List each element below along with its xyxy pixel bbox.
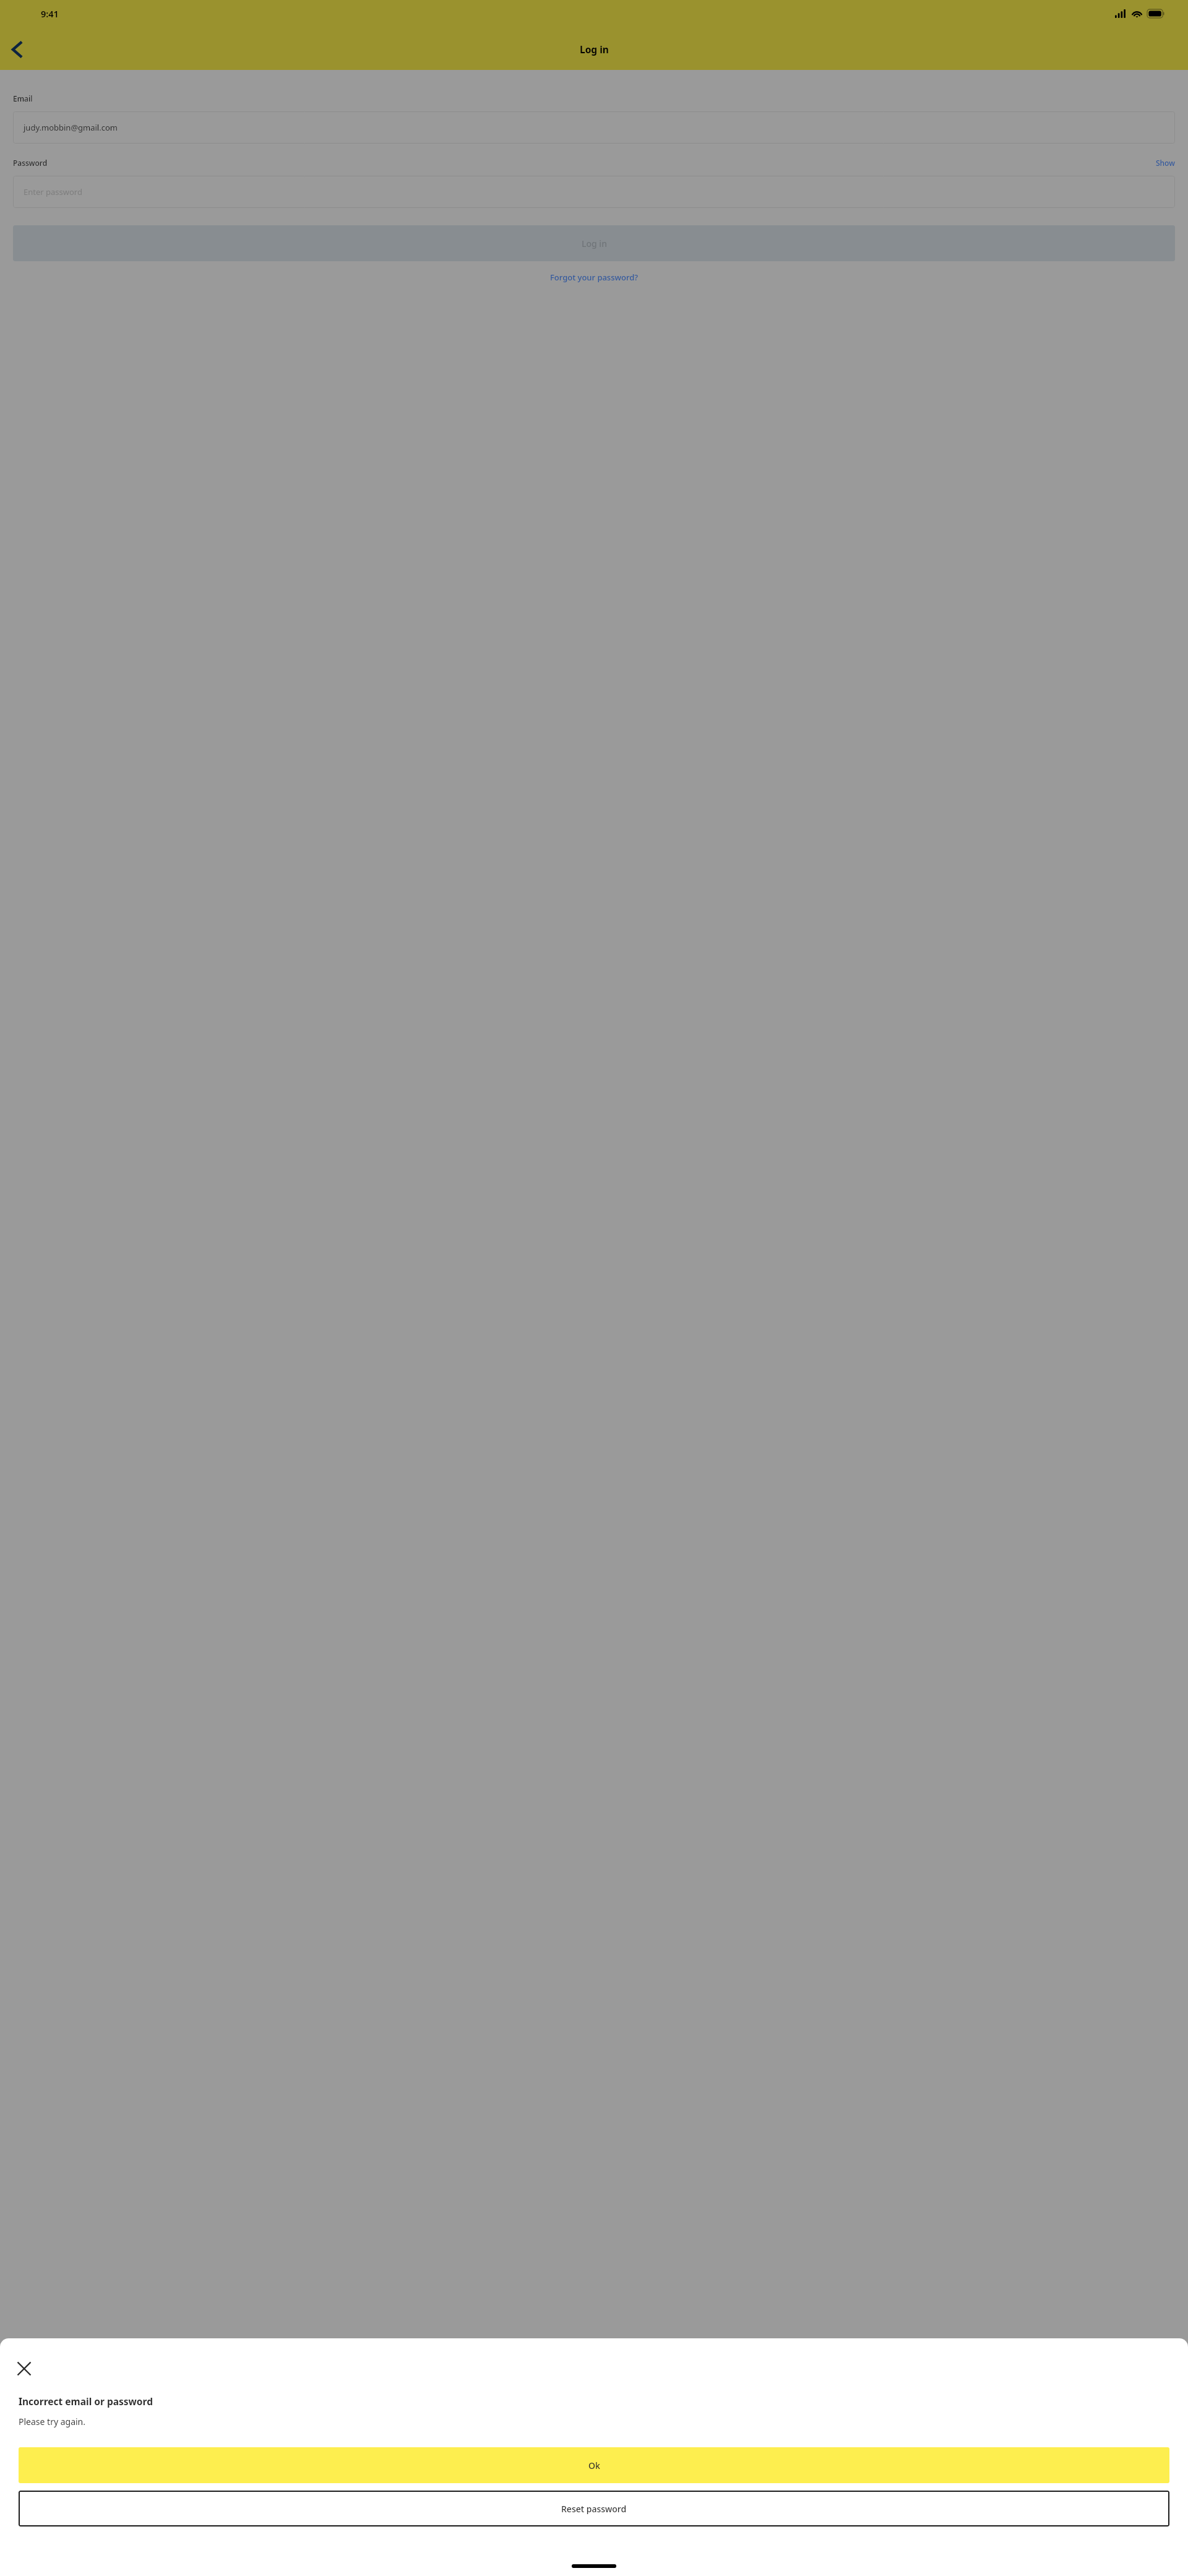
staticText: Log in xyxy=(582,238,607,249)
staticText: judy.mobbin@gmail.com xyxy=(24,122,118,133)
staticText: Enter password xyxy=(24,186,82,197)
staticText: Email xyxy=(13,93,33,103)
button[interactable]: Reset password xyxy=(19,2491,1169,2526)
staticText: Password xyxy=(13,158,48,168)
button[interactable]: judy.mobbin@gmail.com xyxy=(13,111,1175,144)
staticText: Reset password xyxy=(561,2503,627,2515)
button[interactable]: Forgot your password? xyxy=(550,272,639,283)
staticText: Incorrect email or password xyxy=(19,2395,153,2408)
button[interactable]: Close xyxy=(15,2359,33,2378)
button[interactable]: Ok xyxy=(19,2447,1169,2483)
staticText: Please try again. xyxy=(19,2416,86,2427)
staticText: Ok xyxy=(588,2460,600,2471)
button[interactable]: Back xyxy=(6,39,27,59)
staticText: Log in xyxy=(580,43,609,56)
staticText: 9:41 xyxy=(41,7,59,20)
staticText: Show xyxy=(1156,158,1175,168)
staticText: Forgot your password? xyxy=(550,272,639,283)
button[interactable]: Show xyxy=(1156,158,1175,168)
